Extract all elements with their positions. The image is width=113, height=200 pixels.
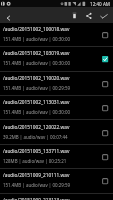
staticText: 151.4MB | audio/wav | 00:30:00 [3,109,71,115]
staticText: 151.4MB | audio/wav | 00:29:59 [3,85,71,91]
button[interactable]: Delete [65,7,81,23]
staticText: /audio/20151002_120022.wav [3,124,70,130]
button[interactable]: /audio/20151002_110020.wav [0,71,113,95]
button[interactable]: /audio/20151002_103019.wav [0,46,113,70]
button[interactable]: Confirm selection [97,7,111,23]
button[interactable]: /audio/20151009_213113.wav [0,193,113,200]
staticText: 151.4MB | audio/wav | 00:30:00 [3,36,71,42]
staticText: /audio/20151005_133711.wav [3,148,70,154]
staticText: 151.4MB | audio/wav | 00:29:59 [3,182,71,188]
staticText: /audio/20151009_213113.wav [3,197,70,200]
staticText: /audio/20151002_110020.wav [3,75,70,81]
button[interactable]: /audio/20151002_100018.wav [0,22,113,46]
button[interactable]: Share [81,7,97,23]
button[interactable]: /audio/20151002_113031.wav [0,95,113,119]
staticText: /audio/20151002_103019.wav [3,50,70,56]
staticText: 39.2MB | audio/wav | 00:07:44 [3,134,68,140]
staticText: /audio/20151002_100018.wav [3,26,70,32]
staticText: 128MB | audio/wav | 00:25:21 [3,158,67,164]
staticText: 12:40 AM [90,1,111,7]
staticText: 151.4MB | audio/wav | 00:30:00 [3,60,71,66]
button[interactable]: Navigate up [0,7,17,23]
button[interactable]: /audio/20151005_133711.wav [0,144,113,168]
button[interactable]: /audio/20151009_210111.wav [0,168,113,192]
staticText: /audio/20151002_113031.wav [3,99,70,105]
staticText: /audio/20151009_210111.wav [3,172,70,178]
button[interactable]: /audio/20151002_120022.wav [0,120,113,144]
